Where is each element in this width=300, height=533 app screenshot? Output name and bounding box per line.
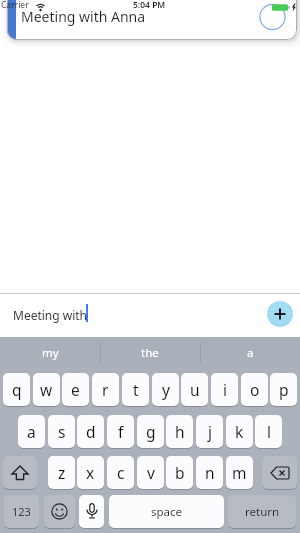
button[interactable]: q [3,373,30,406]
button[interactable]: o [241,373,268,406]
staticText: j [208,421,212,442]
button[interactable] [79,495,104,528]
staticText: y [162,379,170,400]
staticText: Carrier [1,0,29,11]
button[interactable]: my [0,337,100,368]
staticText: t [133,379,139,400]
button[interactable]: c [107,456,134,489]
staticText: a [27,421,36,442]
staticText: return [245,504,280,520]
staticText: d [86,421,96,442]
staticText: r [102,379,109,400]
button[interactable]: h [166,415,193,448]
button[interactable]: b [166,456,193,489]
button[interactable]: x [77,456,104,489]
button[interactable] [44,495,75,528]
staticText: x [86,462,95,483]
staticText: Meeting with Anna [21,7,146,26]
staticText: b [175,462,185,483]
staticText: u [190,379,200,400]
staticText: k [235,421,244,442]
button[interactable]: n [196,456,223,489]
staticText: g [146,421,156,442]
button[interactable]: a [18,415,45,448]
button[interactable]: y [152,373,179,406]
staticText: i [223,379,227,400]
staticText: o [250,379,260,400]
button[interactable] [262,456,297,489]
button[interactable]: d [77,415,104,448]
button[interactable]: 123 [4,495,39,528]
button[interactable]: return [228,495,296,528]
button[interactable]: e [62,373,89,406]
button[interactable]: s [48,415,75,448]
staticText: space [151,504,183,520]
button[interactable]: i [211,373,238,406]
button[interactable]: g [137,415,164,448]
staticText: l [267,421,271,442]
button[interactable] [3,456,37,489]
staticText: z [58,462,66,483]
button[interactable]: Meeting with Anna [7,0,297,40]
staticText: my [42,345,59,361]
button[interactable]: f [107,415,134,448]
button[interactable]: j [196,415,223,448]
staticText: Meeting with [13,307,88,323]
staticText: a [247,345,254,361]
button[interactable]: p [270,373,297,406]
staticText: 5:04 PM [133,0,166,11]
staticText: the [141,345,159,361]
button[interactable]: w [33,373,60,406]
button[interactable]: u [181,373,208,406]
button[interactable]: v [137,456,164,489]
staticText: e [71,379,80,400]
staticText: 123 [12,504,31,519]
button[interactable]: m [226,456,253,489]
staticText: w [40,379,53,400]
staticText: p [279,379,289,400]
staticText: q [12,379,22,400]
button[interactable]: a [200,337,300,368]
button[interactable] [267,301,293,327]
button[interactable]: k [226,415,253,448]
staticText: f [118,421,124,442]
staticText: s [58,421,66,442]
button[interactable]: r [92,373,119,406]
button[interactable]: z [48,456,75,489]
button[interactable]: space [109,495,224,528]
staticText: h [175,421,185,442]
staticText: n [205,462,215,483]
button[interactable]: the [100,337,200,368]
staticText: m [232,462,247,483]
staticText: v [147,462,155,483]
button[interactable]: t [122,373,149,406]
button[interactable]: l [255,415,282,448]
staticText: c [117,462,125,483]
